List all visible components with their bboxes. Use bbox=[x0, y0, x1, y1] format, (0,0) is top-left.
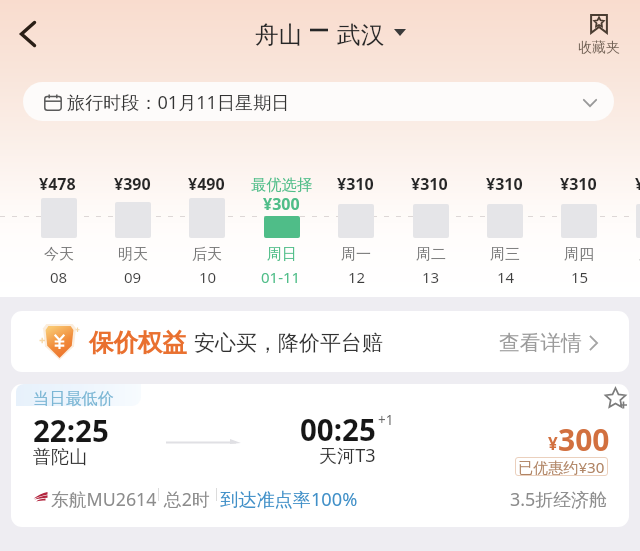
staticText: ¥ bbox=[548, 432, 558, 455]
staticText: 查看详情 bbox=[499, 330, 582, 356]
staticText: 舟山 bbox=[255, 20, 303, 50]
staticText: 周二 bbox=[416, 245, 446, 264]
staticText: 保价权益 bbox=[89, 328, 187, 359]
staticText: 3.5折经济舱 bbox=[510, 487, 607, 511]
staticText: 周三 bbox=[490, 245, 520, 264]
button[interactable] bbox=[21, 172, 95, 284]
staticText: 08 bbox=[50, 267, 68, 287]
staticText: 14 bbox=[497, 267, 515, 287]
button[interactable] bbox=[245, 172, 319, 284]
staticText: 到达准点率100% bbox=[220, 487, 358, 512]
button[interactable] bbox=[170, 172, 244, 284]
button[interactable]: Add to favorites bbox=[603, 386, 629, 412]
staticText: 周四 bbox=[564, 245, 594, 264]
staticText: 当日最低价 bbox=[33, 388, 114, 408]
staticText: 周一 bbox=[341, 245, 371, 264]
staticText: 300 bbox=[558, 419, 610, 460]
staticText: +1 bbox=[378, 411, 394, 429]
button[interactable] bbox=[319, 172, 393, 284]
staticText: ¥310 bbox=[635, 173, 640, 195]
staticText: ¥300 bbox=[263, 193, 300, 215]
staticText: 旅行时段：01月11日星期日 bbox=[67, 90, 290, 115]
staticText: 01-11 bbox=[261, 267, 301, 287]
staticText: ¥310 bbox=[337, 173, 374, 195]
button[interactable] bbox=[468, 172, 542, 284]
staticText: 武汉 bbox=[337, 20, 385, 50]
staticText: ¥490 bbox=[188, 173, 225, 195]
button[interactable] bbox=[96, 172, 170, 284]
staticText: ¥478 bbox=[39, 173, 76, 195]
staticText: ¥310 bbox=[486, 173, 523, 195]
staticText: 00:25 bbox=[300, 409, 376, 449]
staticText: 明天 bbox=[118, 245, 148, 264]
staticText: 已优惠约¥30 bbox=[518, 457, 605, 476]
staticText: 收藏夹 bbox=[578, 39, 620, 57]
button[interactable]: 保价权益 bbox=[11, 311, 629, 372]
staticText: 周五 bbox=[639, 245, 640, 264]
staticText: 15 bbox=[571, 267, 589, 287]
staticText: 今天 bbox=[44, 245, 74, 264]
button[interactable] bbox=[617, 172, 640, 284]
staticText: 12 bbox=[348, 267, 366, 287]
staticText: 总2时 bbox=[164, 487, 210, 511]
staticText: 周日 bbox=[267, 245, 297, 264]
button[interactable] bbox=[23, 82, 614, 121]
staticText: 后天 bbox=[192, 245, 222, 264]
staticText: ¥310 bbox=[411, 173, 448, 195]
staticText: 09 bbox=[124, 267, 142, 287]
staticText: 安心买，降价平台赔 bbox=[194, 330, 383, 356]
button[interactable]: 当日最低价 bbox=[11, 384, 629, 527]
staticText: ¥390 bbox=[114, 173, 151, 195]
button[interactable]: 收藏夹 bbox=[576, 9, 622, 59]
staticText: ¥310 bbox=[560, 173, 597, 195]
button[interactable] bbox=[542, 172, 616, 284]
button[interactable] bbox=[393, 172, 467, 284]
staticText: 最优选择 bbox=[251, 175, 313, 194]
button[interactable]: Back bbox=[7, 12, 51, 56]
staticText: 13 bbox=[422, 267, 440, 287]
staticText: 普陀山 bbox=[33, 446, 88, 469]
button[interactable] bbox=[250, 14, 412, 46]
staticText: 天河T3 bbox=[319, 443, 376, 468]
staticText: 22:25 bbox=[33, 410, 109, 450]
staticText: 10 bbox=[199, 267, 217, 287]
staticText: 东航MU2614 bbox=[51, 487, 157, 511]
